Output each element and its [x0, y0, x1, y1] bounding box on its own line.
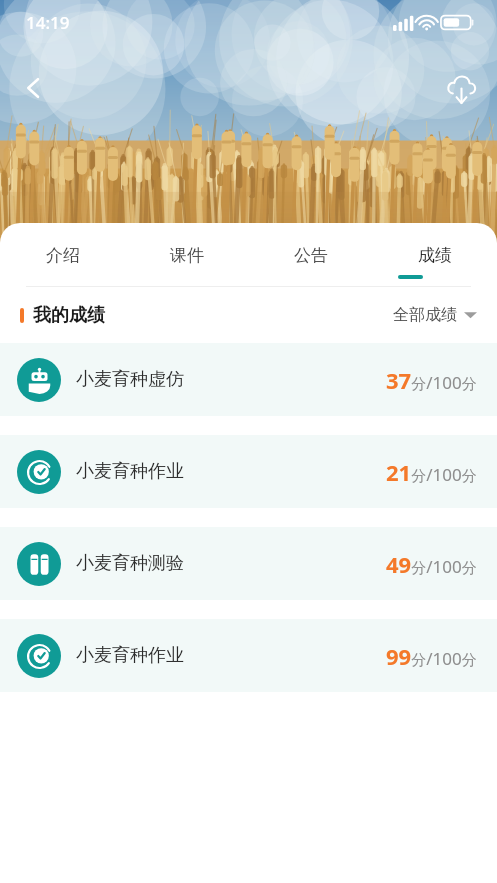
button[interactable]: 介绍 — [0, 223, 125, 287]
button[interactable]: 全部成绩 — [393, 305, 477, 325]
staticText: 14:19 — [26, 11, 70, 34]
staticText: 全部成绩 — [393, 305, 457, 325]
button[interactable]: 小麦育种作业 — [0, 619, 497, 692]
staticText: 99分/100分 — [386, 641, 477, 671]
button[interactable]: 小麦育种作业 — [0, 435, 497, 508]
button[interactable]: 小麦育种测验 — [0, 527, 497, 600]
staticText: 公告 — [294, 245, 328, 266]
button[interactable]: 公告 — [249, 223, 373, 287]
staticText: 课件 — [170, 245, 204, 266]
button[interactable]: 小麦育种虚仿 — [0, 343, 497, 416]
staticText: 我的成绩 — [33, 304, 105, 327]
staticText: 成绩 — [418, 245, 452, 266]
staticText: 小麦育种作业 — [76, 460, 184, 483]
staticText: 21分/100分 — [386, 457, 477, 487]
staticText: 小麦育种作业 — [76, 644, 184, 667]
staticText: 37分/100分 — [386, 365, 477, 395]
staticText: 介绍 — [46, 245, 80, 266]
button[interactable]: Back — [10, 64, 58, 112]
staticText: 小麦育种测验 — [76, 552, 184, 575]
staticText: 49分/100分 — [386, 549, 477, 579]
button[interactable]: 课件 — [125, 223, 249, 287]
button[interactable]: Download — [437, 64, 485, 112]
button[interactable]: 成绩 — [373, 223, 497, 287]
staticText: 小麦育种虚仿 — [76, 368, 184, 391]
